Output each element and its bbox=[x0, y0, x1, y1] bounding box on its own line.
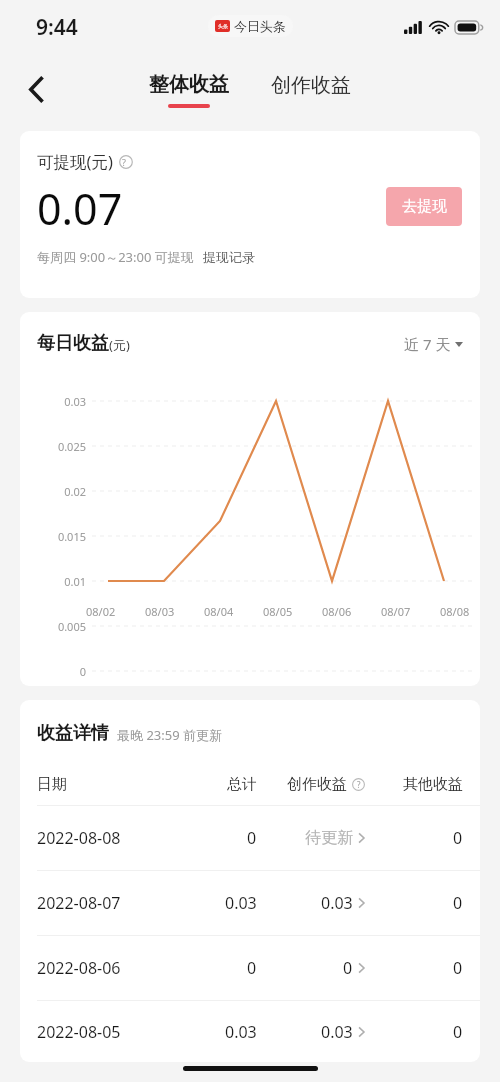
staticText: 0.03 bbox=[321, 892, 353, 914]
staticText: 2022-08-06 bbox=[37, 957, 121, 979]
staticText: 0 bbox=[453, 957, 463, 979]
staticText: 08/04 bbox=[204, 604, 234, 619]
staticText: 0.015 bbox=[57, 529, 86, 544]
staticText: 每日收益 bbox=[37, 332, 109, 355]
button[interactable]: Help bbox=[119, 155, 133, 169]
staticText: 2022-08-05 bbox=[37, 1021, 121, 1043]
staticText: 提现记录 bbox=[203, 249, 255, 265]
button[interactable]: 2022-08-05 bbox=[20, 1001, 480, 1062]
staticText: 创作收益 bbox=[271, 73, 351, 98]
staticText: 近 7 天 bbox=[404, 334, 451, 354]
staticText: 0 bbox=[453, 827, 463, 849]
staticText: 今日头条 bbox=[234, 18, 286, 34]
staticText: 0.03 bbox=[64, 394, 86, 409]
staticText: 0.03 bbox=[225, 1021, 257, 1043]
staticText: 可提现(元) bbox=[37, 150, 113, 173]
staticText: 收益详情 bbox=[37, 722, 109, 745]
button[interactable]: 近 7 天 bbox=[404, 334, 463, 354]
staticText: 0.03 bbox=[321, 1021, 353, 1043]
staticText: 0 bbox=[247, 827, 257, 849]
button[interactable]: Back bbox=[14, 67, 58, 111]
staticText: (元) bbox=[109, 336, 130, 354]
button[interactable]: 去提现 bbox=[386, 187, 462, 226]
staticText: 0 bbox=[247, 957, 257, 979]
staticText: 整体收益 bbox=[149, 72, 229, 97]
staticText: 0.03 bbox=[225, 892, 257, 914]
staticText: 08/02 bbox=[86, 604, 116, 619]
button[interactable]: 提现记录 bbox=[203, 249, 255, 265]
staticText: 08/05 bbox=[263, 604, 293, 619]
staticText: 0 bbox=[79, 664, 86, 679]
button[interactable]: 日期 bbox=[20, 763, 480, 805]
staticText: 08/08 bbox=[440, 604, 470, 619]
button[interactable]: 2022-08-07 bbox=[20, 871, 480, 935]
staticText: 0.02 bbox=[64, 484, 86, 499]
staticText: 0.07 bbox=[37, 179, 123, 238]
staticText: 待更新 bbox=[305, 828, 353, 848]
staticText: 08/03 bbox=[145, 604, 175, 619]
staticText: 头条 bbox=[218, 23, 228, 29]
staticText: 0 bbox=[343, 957, 353, 979]
staticText: 去提现 bbox=[402, 197, 447, 216]
staticText: 0 bbox=[453, 892, 463, 914]
button[interactable]: 2022-08-06 bbox=[20, 936, 480, 1000]
staticText: ? bbox=[357, 779, 361, 790]
staticText: 08/06 bbox=[322, 604, 352, 619]
staticText: 0.01 bbox=[64, 574, 86, 589]
staticText: 0.005 bbox=[57, 619, 86, 634]
staticText: 创作收益 bbox=[287, 775, 347, 794]
button[interactable]: 创作收益 bbox=[267, 78, 355, 103]
staticText: 2022-08-07 bbox=[37, 892, 121, 914]
staticText: 日期 bbox=[37, 775, 67, 794]
staticText: 08/07 bbox=[381, 604, 411, 619]
button[interactable]: 2022-08-08 bbox=[20, 806, 480, 870]
staticText: ? bbox=[122, 156, 126, 168]
staticText: 2022-08-08 bbox=[37, 827, 121, 849]
staticText: 总计 bbox=[227, 775, 257, 794]
staticText: 0.025 bbox=[57, 439, 86, 454]
staticText: 9:44 bbox=[36, 13, 78, 42]
staticText: 最晚 23:59 前更新 bbox=[117, 726, 222, 744]
staticText: 0 bbox=[453, 1021, 463, 1043]
button[interactable]: 整体收益 bbox=[145, 72, 233, 108]
staticText: 其他收益 bbox=[403, 775, 463, 794]
staticText: 每周四 9:00～23:00 可提现 bbox=[37, 248, 194, 266]
